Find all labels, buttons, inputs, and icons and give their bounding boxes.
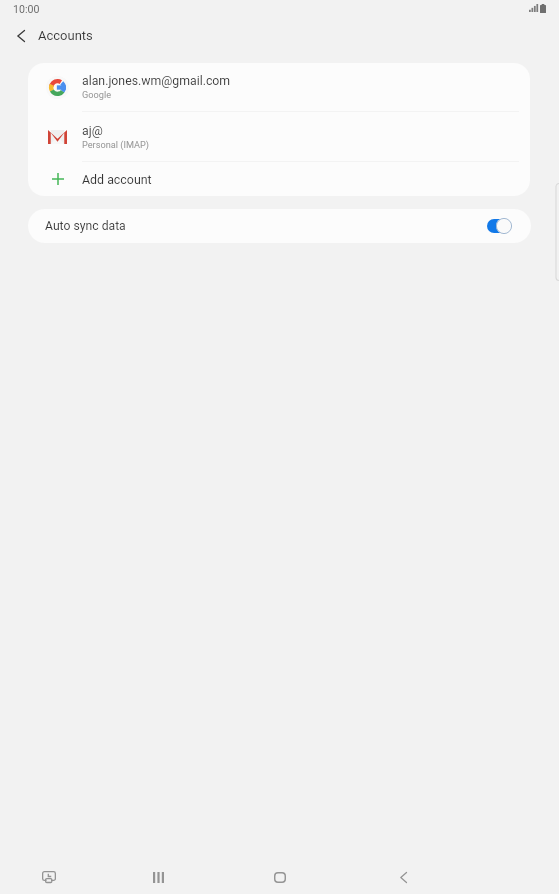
- staticText: Google: [82, 89, 112, 100]
- button[interactable]: Home: [260, 860, 300, 894]
- button[interactable]: Hide keyboard: [29, 860, 69, 894]
- staticText: Add account: [82, 172, 152, 187]
- staticText: 10:00: [13, 3, 40, 15]
- button[interactable]: Recent apps: [138, 860, 178, 894]
- button[interactable]: Back: [383, 860, 423, 894]
- button[interactable]: Navigate up: [6, 21, 36, 51]
- staticText: Auto sync data: [45, 219, 126, 233]
- staticText: Accounts: [38, 28, 93, 43]
- button[interactable]: Auto sync data: [28, 209, 531, 243]
- button[interactable]: Add account: [28, 162, 530, 196]
- staticText: Personal (IMAP): [82, 139, 150, 150]
- staticText: alan.jones.wm@gmail.com: [82, 74, 231, 88]
- staticText: aj@: [82, 124, 103, 138]
- button[interactable]: alan.jones.wm@gmail.com: [28, 63, 530, 111]
- button[interactable]: aj@: [28, 112, 530, 161]
